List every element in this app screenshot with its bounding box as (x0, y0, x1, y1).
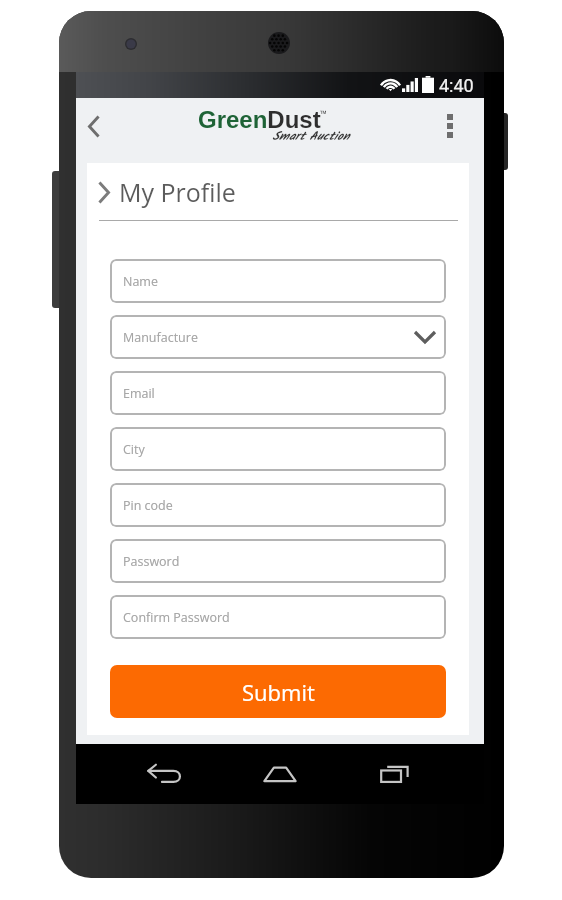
staticText: GreenDust (198, 106, 321, 133)
staticText: Manufacture (123, 329, 198, 346)
staticText: Name (123, 273, 158, 290)
button[interactable]: Confirm Password (110, 595, 446, 639)
staticText: My Profile (119, 175, 236, 209)
other: Battery (422, 76, 434, 93)
button[interactable]: Recent apps (369, 748, 421, 800)
staticText: Smart Auction (272, 127, 349, 146)
button[interactable]: Email (110, 371, 446, 415)
button[interactable]: Pin code (110, 483, 446, 527)
other: Mobile signal (402, 78, 418, 92)
staticText: 4:40 (439, 75, 474, 96)
button[interactable]: Home (254, 748, 306, 800)
button[interactable]: Submit (110, 665, 446, 718)
staticText: Pin code (123, 497, 173, 514)
button[interactable]: Manufacture (110, 315, 446, 359)
staticText: ™ (320, 107, 327, 119)
other: Wi-Fi (380, 76, 401, 91)
button[interactable]: Back (78, 104, 110, 148)
button[interactable]: City (110, 427, 446, 471)
button[interactable]: Back (139, 748, 191, 800)
staticText: Confirm Password (123, 609, 230, 626)
button[interactable]: Name (110, 259, 446, 303)
staticText: Email (123, 385, 155, 402)
staticText: Password (123, 553, 180, 570)
staticText: City (123, 441, 145, 458)
button[interactable]: Password (110, 539, 446, 583)
staticText: Submit (242, 677, 315, 707)
button[interactable]: More options (431, 104, 469, 148)
